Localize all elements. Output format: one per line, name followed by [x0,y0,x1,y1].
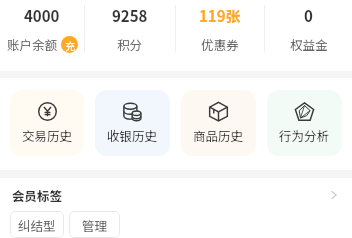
staticText: 管理 [82,216,108,234]
staticText: 交易历史 [22,126,73,144]
staticText: 权益金 [290,35,328,53]
button[interactable]: 会员标签 [0,178,352,211]
staticText: 119张 [199,5,241,27]
button[interactable]: 交易历史 [10,90,84,156]
button[interactable]: 119张 [176,5,264,53]
staticText: 积分 [117,35,143,53]
staticText: 收银历史 [107,126,158,144]
other: More member tags [328,189,340,201]
button[interactable]: 收银历史 [95,90,170,156]
button[interactable]: 管理 [69,211,120,238]
button[interactable]: 商品历史 [181,90,256,156]
button[interactable]: 行为分析 [267,90,342,156]
staticText: 4000 [24,5,60,27]
staticText: 行为分析 [279,126,330,144]
button[interactable]: 0 [265,5,352,53]
staticText: 会员标签 [12,186,63,204]
staticText: 纠结型 [18,216,56,234]
staticText: 9258 [112,5,148,27]
staticText: 充 [65,38,75,52]
staticText: 0 [304,5,313,27]
button[interactable]: 9258 [85,5,175,53]
staticText: 优惠券 [201,35,239,53]
staticText: 商品历史 [193,126,244,144]
button[interactable]: 4000 [0,5,84,53]
staticText: 账户余额 [7,35,58,53]
button[interactable]: 纠结型 [10,211,64,238]
